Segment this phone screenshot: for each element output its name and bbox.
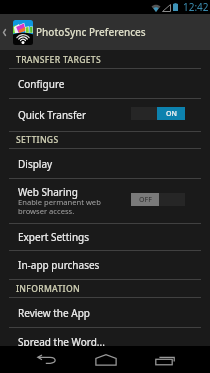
button[interactable]: Off bbox=[131, 193, 185, 206]
button[interactable]: Recent apps bbox=[135, 346, 194, 373]
button[interactable]: Configure bbox=[0, 69, 210, 98]
button[interactable]: Navigate up bbox=[0, 14, 33, 50]
staticText: Display bbox=[18, 157, 53, 171]
staticText: INFORMATION bbox=[16, 283, 80, 295]
button[interactable]: Expert Settings bbox=[0, 224, 210, 250]
button[interactable]: In-app purchases bbox=[0, 251, 210, 279]
button[interactable]: On bbox=[131, 107, 185, 120]
button[interactable]: Home bbox=[76, 346, 135, 373]
button[interactable]: Quick Transfer bbox=[0, 99, 210, 131]
button[interactable]: Review the App bbox=[0, 298, 210, 327]
staticText: SETTINGS bbox=[16, 134, 59, 146]
staticText: ON bbox=[166, 109, 177, 119]
staticText: Configure bbox=[18, 77, 65, 91]
staticText: Quick Transfer bbox=[18, 108, 87, 122]
staticText: Web Sharing bbox=[18, 185, 78, 199]
staticText: Spread the Word... bbox=[18, 335, 105, 349]
button[interactable]: Spread the Word... bbox=[0, 328, 210, 355]
staticText: In-app purchases bbox=[18, 258, 100, 272]
button[interactable]: Back bbox=[17, 346, 76, 373]
staticText: OFF bbox=[139, 195, 152, 205]
staticText: TRANSFER TARGETS bbox=[16, 54, 101, 66]
staticText: 12:42 bbox=[183, 0, 209, 14]
staticText: Expert Settings bbox=[18, 230, 90, 244]
button[interactable]: Display bbox=[0, 149, 210, 178]
staticText: PhotoSync Preferences bbox=[36, 25, 146, 39]
staticText: Enable permanent web browser access. bbox=[18, 197, 101, 216]
button[interactable]: Web Sharing bbox=[0, 179, 210, 223]
staticText: Review the App bbox=[18, 306, 90, 320]
